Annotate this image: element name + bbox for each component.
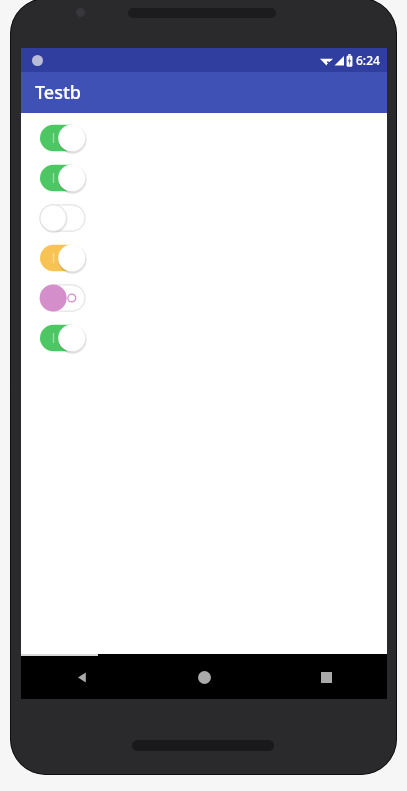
button[interactable]: Toggle switch xyxy=(40,118,98,158)
button[interactable]: Toggle switch xyxy=(40,318,98,358)
button[interactable]: Home xyxy=(143,656,265,699)
button[interactable]: Testb xyxy=(21,72,387,113)
button[interactable]: Toggle switch xyxy=(40,238,98,278)
staticText: Testb xyxy=(35,80,81,105)
button[interactable]: Toggle switch xyxy=(40,278,98,318)
button[interactable]: Toggle switch xyxy=(40,198,98,238)
staticText: 6:24 xyxy=(356,52,380,68)
button[interactable]: Toggle switch xyxy=(40,158,98,198)
button[interactable]: Recent apps xyxy=(265,656,387,699)
button[interactable]: Back xyxy=(21,656,143,699)
